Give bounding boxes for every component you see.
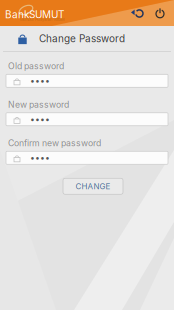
staticText: •••• xyxy=(30,114,50,124)
staticText: Bank xyxy=(5,8,29,21)
staticText: CHANGE xyxy=(75,181,110,191)
button[interactable]: Back xyxy=(131,7,145,19)
staticText: SUMUT xyxy=(29,8,64,21)
staticText: Change Password xyxy=(39,32,125,45)
staticText: Old password xyxy=(8,61,64,71)
button[interactable]: Log out xyxy=(145,7,166,19)
staticText: •••• xyxy=(30,152,50,163)
staticText: •••• xyxy=(30,75,50,86)
staticText: New password xyxy=(8,99,69,110)
staticText: Memberi Pelayanan Terbaik xyxy=(20,17,65,22)
staticText: Confirm new password xyxy=(8,138,101,148)
button[interactable]: CHANGE xyxy=(63,178,123,194)
